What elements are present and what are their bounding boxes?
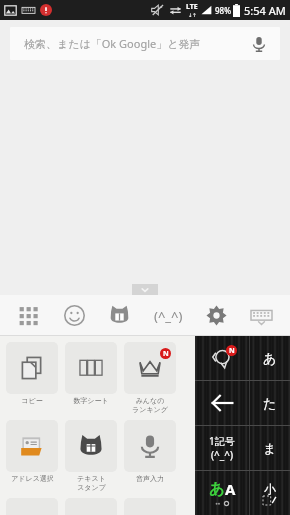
staticText: (^_^) — [154, 307, 183, 325]
staticText: 検索、または「Ok Google」と発声 — [24, 36, 201, 51]
button[interactable]: 数字シート — [65, 342, 117, 405]
button[interactable]: Emoji — [54, 295, 94, 336]
button[interactable]: Input mode — [195, 471, 249, 515]
staticText: 5:54 AM — [244, 3, 286, 18]
button[interactable]: アドレス選択 — [6, 420, 58, 483]
button[interactable]: Stickers — [99, 295, 139, 336]
button[interactable]: Kaomoji — [145, 295, 191, 336]
staticText: あ — [263, 350, 277, 366]
button[interactable]: た — [250, 381, 290, 425]
staticText: アドレス選択 — [11, 474, 54, 483]
staticText: (^_^) — [211, 448, 233, 462]
staticText: ま — [263, 440, 277, 456]
staticText: 小 — [264, 481, 276, 496]
staticText: みんなの ランキング — [132, 396, 168, 414]
button[interactable]: 検索、または「Ok Google」と発声 — [10, 27, 280, 60]
staticText: 数字シート — [73, 396, 109, 405]
button[interactable]: 小 — [250, 471, 290, 515]
button[interactable]: Voice search — [248, 33, 270, 55]
button[interactable]: テキスト スタンプ — [65, 420, 117, 492]
button[interactable]: ま — [250, 426, 290, 470]
button[interactable]: Apps — [9, 295, 49, 336]
staticText: N — [229, 346, 235, 356]
staticText: コピー — [21, 396, 43, 405]
button[interactable]: Keyboard — [241, 295, 281, 336]
button[interactable]: N — [124, 342, 176, 414]
button[interactable]: Emoji key — [195, 336, 249, 380]
button[interactable]: Settings — [196, 295, 236, 336]
staticText: 音声入力 — [136, 474, 164, 483]
staticText: LTE — [186, 2, 198, 12]
button[interactable]: Collapse — [132, 284, 158, 295]
staticText: N — [163, 349, 169, 359]
staticText: 1記号 — [209, 434, 235, 448]
staticText: 98% — [215, 5, 231, 16]
staticText: あ — [209, 480, 225, 499]
staticText: ↓↑ — [188, 12, 197, 18]
staticText: テキスト スタンプ — [77, 474, 106, 492]
staticText: A — [225, 479, 236, 499]
button[interactable]: あ — [250, 336, 290, 380]
button[interactable]: Backspace — [195, 381, 249, 425]
button[interactable]: コピー — [6, 342, 58, 405]
button[interactable]: 音声入力 — [124, 420, 176, 483]
button[interactable]: Symbols — [195, 426, 249, 470]
staticText: た — [263, 395, 277, 411]
